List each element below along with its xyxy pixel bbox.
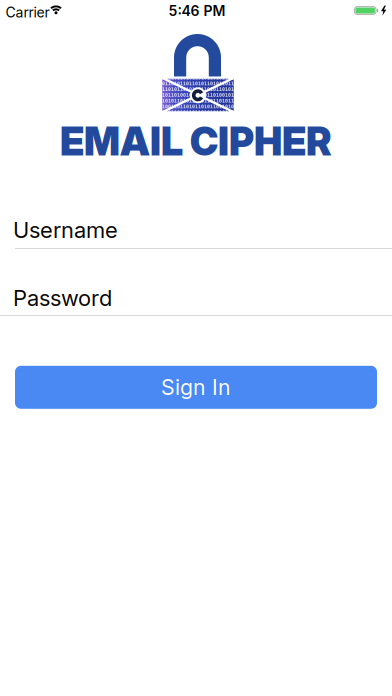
staticText: 1011010011011010110101101101011010: [147, 104, 249, 109]
staticText: 0110101101011011010110101101101011: [147, 81, 249, 86]
button[interactable]: Username: [13, 211, 392, 249]
staticText: 1101101011010110110101011011010110: [147, 109, 249, 115]
staticText: 0110110101101011010110110101101011: [147, 98, 249, 104]
staticText: Username: [13, 217, 118, 243]
staticText: Password: [13, 285, 112, 311]
staticText: Sign In: [161, 374, 231, 400]
button[interactable]: Sign In: [15, 366, 377, 409]
staticText: 5:46 PM: [168, 2, 225, 19]
staticText: 1101011010110101101101011010101101: [147, 86, 249, 92]
staticText: EMAIL CIPHER: [60, 118, 332, 165]
staticText: Carrier: [5, 4, 49, 21]
button[interactable]: Password: [13, 279, 392, 317]
staticText: 1011010110110101101011010110101101: [147, 75, 249, 81]
staticText: 1011010110100101101011010010110101: [147, 92, 249, 98]
